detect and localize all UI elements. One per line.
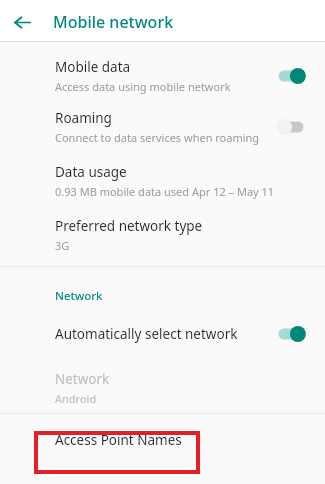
staticText: Automatically select network	[55, 325, 238, 343]
button[interactable]: Back	[8, 8, 36, 36]
staticText: Access Point Names	[55, 431, 182, 449]
staticText: Network	[55, 288, 103, 304]
staticText: Mobile network	[53, 11, 174, 33]
staticText: Mobile data	[55, 58, 131, 76]
button[interactable]: Switch on	[271, 321, 311, 347]
button[interactable]: Access Point Names	[0, 414, 325, 466]
staticText: 3G	[55, 238, 70, 253]
staticText: Data usage	[55, 163, 127, 181]
button[interactable]: Mobile data	[0, 52, 325, 100]
staticText: Android	[55, 391, 97, 406]
button[interactable]: Preferred network type	[0, 208, 325, 262]
staticText: Roaming	[55, 109, 112, 127]
staticText: Preferred network type	[55, 217, 203, 235]
button[interactable]: Data usage	[0, 154, 325, 208]
staticText: 0.93 MB mobile data used Apr 12 – May 11	[55, 184, 275, 199]
button[interactable]: Automatically select network	[0, 313, 325, 355]
button[interactable]: Switch off	[271, 114, 311, 140]
staticText: Network	[55, 370, 110, 388]
staticText: Access data using mobile network	[55, 79, 231, 94]
staticText: Connect to data services when roaming	[55, 130, 260, 145]
button[interactable]: Roaming	[0, 100, 325, 154]
button[interactable]: Switch on	[271, 63, 311, 89]
